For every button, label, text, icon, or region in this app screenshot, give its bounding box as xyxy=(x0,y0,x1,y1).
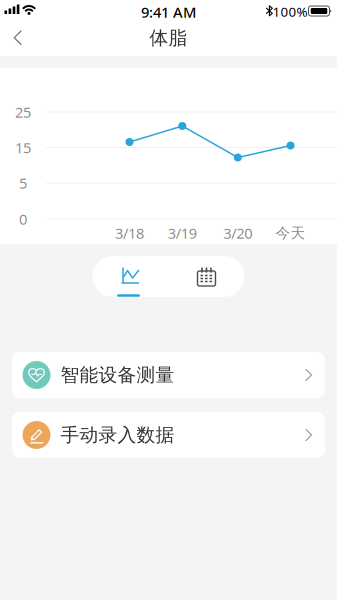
button[interactable]: 手动录入数据 xyxy=(12,412,325,458)
staticText: 100% xyxy=(272,3,307,20)
button[interactable]: Calendar view xyxy=(168,256,244,297)
staticText: 15 xyxy=(15,138,31,157)
staticText: 3/19 xyxy=(168,223,197,243)
staticText: 今天 xyxy=(275,224,305,242)
staticText: 5 xyxy=(19,173,27,193)
button[interactable]: 智能设备测量 xyxy=(12,352,325,398)
staticText: 手动录入数据 xyxy=(60,423,174,446)
staticText: 智能设备测量 xyxy=(60,363,174,386)
staticText: 3/20 xyxy=(223,223,252,243)
staticText: 9:41 AM xyxy=(141,2,196,22)
staticText: 25 xyxy=(15,102,31,122)
staticText: 体脂 xyxy=(149,26,187,49)
staticText: 0 xyxy=(19,209,27,229)
button[interactable]: Back xyxy=(0,22,40,56)
button[interactable]: Chart view xyxy=(92,256,168,297)
staticText: 3/18 xyxy=(115,223,144,243)
